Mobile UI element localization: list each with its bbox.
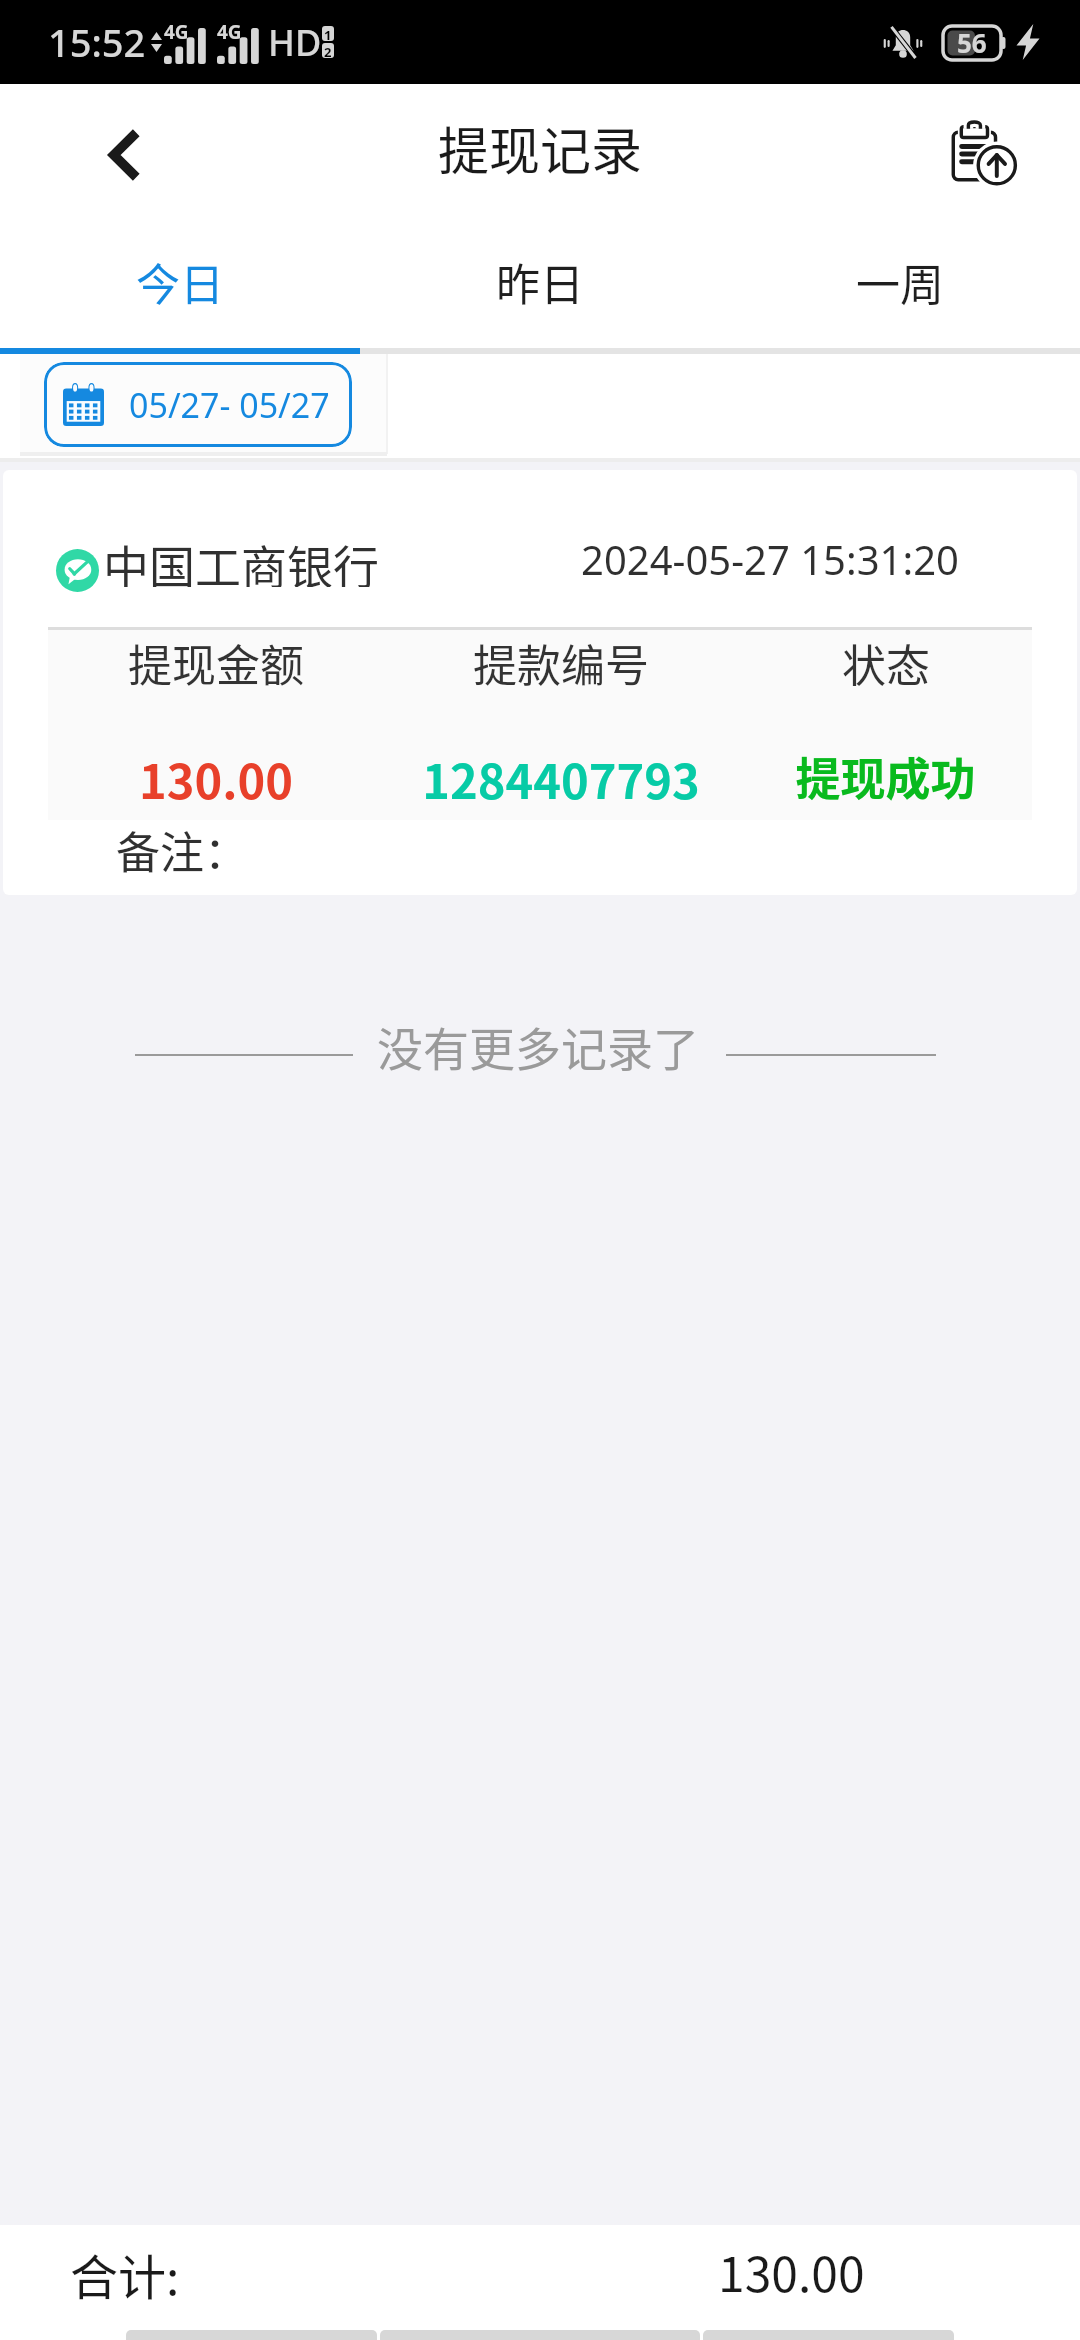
staticText: 05/27- 05/27 — [129, 382, 330, 428]
staticText: 提现金额 — [128, 631, 304, 695]
staticText: 1 — [324, 26, 332, 41]
button[interactable]: Export records — [942, 113, 1026, 197]
staticText: 1284407793 — [422, 744, 700, 812]
button[interactable]: 一周 — [720, 225, 1080, 348]
staticText: 4G — [217, 19, 242, 45]
staticText: 状态 — [842, 631, 930, 695]
button[interactable]: 05/27- 05/27 — [44, 362, 352, 447]
staticText: 2024-05-27 15:31:20 — [581, 532, 959, 586]
staticText: 中国工商银行 — [103, 531, 379, 587]
staticText: 4G — [164, 19, 189, 45]
staticText: 没有更多记录了 — [377, 1013, 699, 1080]
staticText: 提款编号 — [473, 631, 649, 695]
staticText: 56 — [957, 25, 987, 60]
staticText: 备注： — [116, 818, 248, 882]
staticText: 今日 — [136, 250, 224, 314]
staticText: 15:52 — [48, 16, 146, 68]
staticText: 2 — [324, 43, 332, 58]
button[interactable]: 昨日 — [360, 225, 720, 348]
staticText: 昨日 — [496, 250, 584, 314]
staticText: HD — [268, 18, 322, 67]
staticText: 提现成功 — [795, 744, 976, 809]
staticText: 130.00 — [718, 2236, 865, 2306]
staticText: 130.00 — [139, 744, 293, 812]
staticText: 一周 — [856, 250, 944, 314]
staticText: 提现记录 — [438, 111, 643, 185]
button[interactable]: Back — [80, 111, 168, 199]
button[interactable]: 今日 — [0, 225, 360, 348]
staticText: 合计: — [70, 2239, 180, 2309]
